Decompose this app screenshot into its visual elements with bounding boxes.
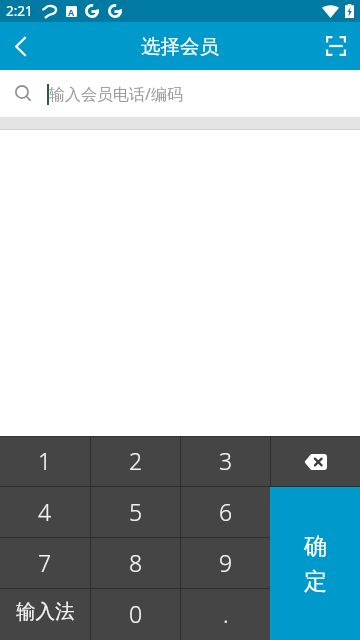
staticText: 3 <box>219 445 233 476</box>
staticText: 选择会员 <box>141 34 219 59</box>
staticText: . <box>223 598 229 629</box>
button[interactable]: 6 <box>181 487 270 537</box>
button[interactable]: 2 <box>91 437 180 486</box>
button[interactable]: Backspace <box>271 437 360 486</box>
button[interactable]: 3 <box>181 437 270 486</box>
staticText: A <box>68 6 75 17</box>
button[interactable]: Scan code <box>312 22 360 70</box>
button[interactable]: 0 <box>91 589 180 640</box>
staticText: 输入会员电话/编码 <box>49 83 183 105</box>
staticText: 1 <box>38 445 52 476</box>
staticText: 4 <box>38 496 52 527</box>
button[interactable]: 1 <box>0 437 90 486</box>
staticText: 8 <box>129 547 143 578</box>
button[interactable]: 确 定 <box>270 487 360 640</box>
staticText: 6 <box>219 496 233 527</box>
staticText: 输入法 <box>16 599 75 624</box>
staticText: 确 定 <box>304 532 327 596</box>
staticText: 9 <box>219 547 233 578</box>
button[interactable]: Back <box>0 22 41 70</box>
button[interactable]: . <box>181 589 270 640</box>
staticText: 2 <box>129 445 143 476</box>
staticText: 7 <box>38 547 52 578</box>
button[interactable]: 8 <box>91 538 180 588</box>
staticText: 5 <box>129 496 143 527</box>
button[interactable]: 5 <box>91 487 180 537</box>
button[interactable]: 9 <box>181 538 270 588</box>
staticText: 0 <box>129 598 143 629</box>
button[interactable]: 4 <box>0 487 90 537</box>
button[interactable]: 输入法 <box>0 589 90 640</box>
staticText: 2:21 <box>6 2 33 20</box>
button[interactable]: 7 <box>0 538 90 588</box>
